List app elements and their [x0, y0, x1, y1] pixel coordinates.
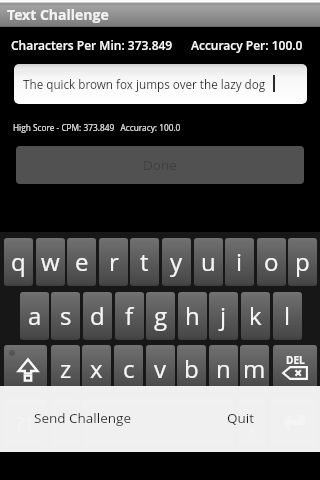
staticText: s — [60, 299, 72, 332]
staticText: . — [249, 408, 256, 439]
button[interactable]: v — [146, 345, 175, 393]
button[interactable]: j — [209, 292, 238, 340]
staticText: High Score - CPM: 373.849 Accuracy: 100.… — [13, 122, 181, 133]
button[interactable]: d — [83, 292, 112, 340]
staticText: y — [170, 245, 183, 278]
button[interactable]: z — [51, 345, 80, 393]
button[interactable]: t — [130, 238, 159, 286]
button[interactable]: g — [146, 292, 175, 340]
staticText: f — [125, 299, 134, 332]
staticText: h — [185, 299, 200, 332]
button[interactable]: q — [4, 238, 33, 286]
staticText: t — [140, 245, 149, 278]
staticText: DEL — [286, 353, 305, 367]
button[interactable]: Emoji — [51, 399, 80, 447]
staticText: z — [60, 352, 72, 385]
button[interactable]: The quick brown fox jumps over the lazy … — [14, 64, 307, 104]
staticText: j — [220, 299, 227, 332]
staticText: p — [295, 245, 310, 278]
staticText: The quick brown fox jumps over the lazy … — [23, 76, 266, 92]
button[interactable]: x — [82, 345, 111, 393]
staticText: Send Challenge — [34, 409, 132, 427]
button[interactable]: s — [51, 292, 80, 340]
button[interactable]: r — [99, 238, 128, 286]
button[interactable]: y — [162, 238, 191, 286]
staticText: Quit — [227, 409, 254, 427]
staticText: v — [154, 352, 167, 385]
button[interactable]: i — [225, 238, 254, 286]
staticText: Text Challenge — [7, 5, 109, 24]
staticText: k — [249, 299, 262, 332]
staticText: r — [109, 245, 119, 278]
button[interactable]: a — [20, 292, 49, 340]
staticText: b — [184, 352, 199, 385]
button[interactable]: k — [241, 292, 270, 340]
button[interactable]: Delete — [273, 345, 317, 393]
button[interactable]: Shift — [4, 345, 47, 393]
button[interactable]: Symbols — [4, 399, 47, 447]
button[interactable]: h — [178, 292, 207, 340]
staticText: q — [11, 245, 26, 278]
staticText: x — [90, 352, 103, 385]
button[interactable]: w — [36, 238, 65, 286]
staticText: Done — [143, 156, 177, 174]
button[interactable]: c — [114, 345, 143, 393]
button[interactable]: Space — [82, 399, 234, 447]
staticText: l — [284, 299, 291, 332]
button[interactable]: e — [67, 238, 96, 286]
staticText: Accuracy Per: 100.0 — [191, 37, 303, 53]
button[interactable]: l — [273, 292, 302, 340]
button[interactable]: Send Challenge — [0, 386, 160, 452]
staticText: m — [243, 352, 266, 385]
button[interactable]: Period — [238, 399, 267, 447]
staticText: i — [236, 245, 243, 278]
staticText: c — [123, 352, 135, 385]
button[interactable]: p — [288, 238, 317, 286]
button[interactable]: u — [194, 238, 223, 286]
staticText: o — [264, 245, 279, 278]
staticText: u — [201, 245, 216, 278]
staticText: g — [154, 299, 168, 332]
staticText: w — [41, 245, 60, 278]
button[interactable]: b — [177, 345, 206, 393]
staticText: a — [28, 299, 42, 332]
button[interactable]: m — [240, 345, 269, 393]
staticText: Characters Per Min: 373.849 — [11, 37, 173, 53]
button[interactable]: Quit — [160, 386, 320, 452]
button[interactable]: n — [209, 345, 238, 393]
button[interactable]: f — [115, 292, 144, 340]
staticText: d — [90, 299, 105, 332]
button[interactable]: o — [257, 238, 286, 286]
staticText: n — [216, 352, 231, 385]
staticText: e — [75, 245, 89, 278]
